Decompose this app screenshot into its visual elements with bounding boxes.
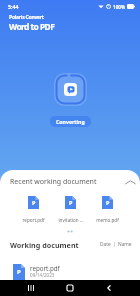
button[interactable]: P bbox=[0, 264, 140, 280]
staticText: Date bbox=[100, 241, 111, 248]
button[interactable]: Converting bbox=[50, 116, 91, 127]
staticText: P bbox=[106, 199, 110, 206]
staticText: Name bbox=[118, 241, 132, 248]
staticText: P bbox=[32, 199, 36, 206]
staticText: report.pdf bbox=[30, 264, 60, 272]
staticText: Converting bbox=[56, 118, 85, 125]
staticText: P bbox=[17, 268, 21, 276]
staticText: Working document bbox=[10, 240, 79, 250]
staticText: P bbox=[69, 199, 73, 206]
staticText: 09/14/2023 bbox=[30, 272, 55, 278]
staticText: Word to PDF bbox=[9, 21, 55, 32]
staticText: memo.pdf bbox=[96, 217, 119, 223]
button[interactable]: Recent working document bbox=[0, 176, 140, 187]
button[interactable]: P bbox=[52, 196, 89, 223]
staticText: invitation ... bbox=[58, 217, 84, 223]
other: Collapse bbox=[125, 178, 136, 186]
button[interactable]: Home bbox=[62, 280, 78, 296]
button[interactable]: Recents bbox=[23, 280, 39, 296]
button[interactable]: Back bbox=[101, 280, 117, 296]
button[interactable]: Date bbox=[97, 239, 114, 250]
staticText: Polaris Convert bbox=[9, 14, 44, 21]
button[interactable]: P bbox=[89, 196, 126, 223]
button[interactable]: P bbox=[14, 196, 52, 223]
staticText: 100% bbox=[113, 4, 126, 10]
button[interactable]: Name bbox=[115, 239, 135, 250]
staticText: 5:44 bbox=[8, 3, 19, 10]
staticText: report.pdf bbox=[22, 217, 45, 223]
staticText: Recent working document bbox=[10, 177, 97, 187]
